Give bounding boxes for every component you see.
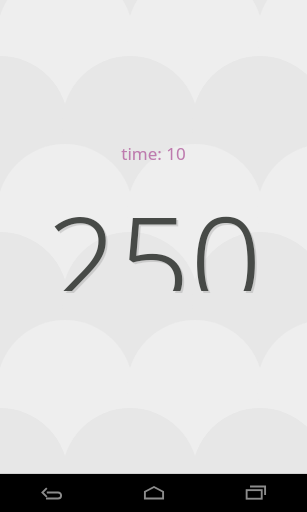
button[interactable]: Recent apps	[205, 474, 307, 512]
staticText: 250	[48, 175, 264, 293]
button[interactable]: 250	[0, 173, 307, 291]
staticText: 250	[46, 173, 262, 291]
button[interactable]: time: 10	[121, 142, 186, 165]
button[interactable]: Back	[0, 474, 103, 512]
button[interactable]: Home	[103, 474, 205, 512]
